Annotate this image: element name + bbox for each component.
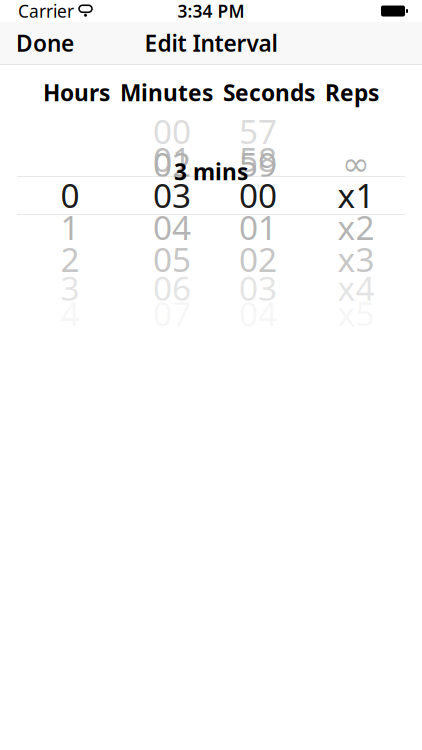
staticText: 04 <box>239 291 277 336</box>
staticText: Hours <box>43 77 110 108</box>
staticText: 03 <box>239 266 277 310</box>
staticText: 01 <box>153 137 191 181</box>
staticText <box>74 1 78 21</box>
staticText: 01 <box>239 205 277 249</box>
staticText: 03 <box>153 173 191 217</box>
staticText: x4 <box>337 266 374 310</box>
staticText: 59 <box>239 142 277 186</box>
staticText: 00 <box>239 173 277 217</box>
staticText: 02 <box>239 237 277 281</box>
staticText: ∞ <box>342 145 370 183</box>
staticText: Done <box>16 28 74 58</box>
staticText: 3 <box>60 266 79 310</box>
staticText: Reps <box>325 77 379 108</box>
staticText: 57 <box>239 109 277 153</box>
staticText: 4 <box>60 291 79 336</box>
button[interactable]: Done <box>0 18 90 68</box>
staticText: 2 <box>60 237 79 281</box>
staticText: 00 <box>153 109 191 153</box>
staticText: x5 <box>337 291 374 336</box>
staticText: x2 <box>337 205 374 249</box>
staticText: x3 <box>337 237 374 281</box>
staticText: 06 <box>153 266 191 310</box>
staticText: 02 <box>153 142 191 186</box>
staticText: 07 <box>153 291 191 336</box>
staticText: x1 <box>337 173 374 217</box>
staticText: 3 mins <box>174 156 248 187</box>
staticText: Carrier <box>18 0 74 22</box>
staticText: 05 <box>153 237 191 281</box>
staticText: Minutes <box>120 77 213 108</box>
staticText: Edit Interval <box>144 28 277 58</box>
staticText: 3:34 PM <box>177 0 244 22</box>
staticText: 0 <box>60 173 79 217</box>
staticText: 58 <box>239 137 277 181</box>
staticText: 1 <box>60 205 79 249</box>
staticText: Seconds <box>223 77 315 108</box>
staticText: 04 <box>153 205 191 249</box>
